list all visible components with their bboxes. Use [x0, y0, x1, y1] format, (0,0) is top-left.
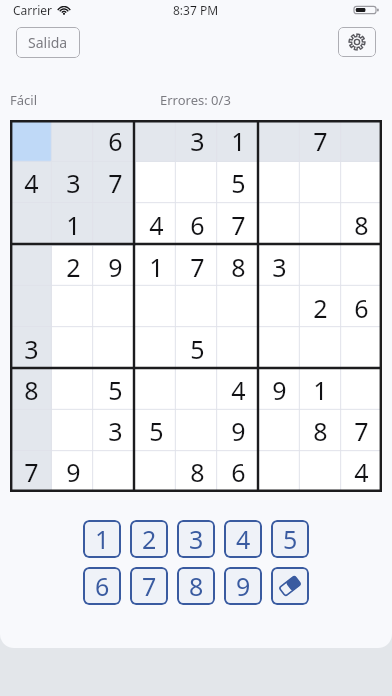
- button[interactable]: [10, 204, 52, 246]
- button[interactable]: 3: [10, 328, 52, 369]
- button[interactable]: 3: [259, 246, 300, 287]
- button[interactable]: 8: [177, 451, 218, 492]
- button[interactable]: 5: [177, 328, 218, 369]
- button[interactable]: 3: [52, 162, 94, 204]
- button[interactable]: 7: [177, 246, 218, 287]
- button[interactable]: 1: [83, 520, 121, 558]
- button[interactable]: [52, 120, 94, 162]
- button[interactable]: [52, 410, 94, 451]
- button[interactable]: 4: [10, 162, 52, 204]
- button[interactable]: 1: [136, 246, 177, 287]
- button[interactable]: [341, 369, 382, 410]
- button[interactable]: [218, 287, 259, 328]
- button[interactable]: [300, 246, 341, 287]
- button[interactable]: [259, 328, 300, 369]
- button[interactable]: 2: [130, 520, 168, 558]
- button[interactable]: [94, 204, 136, 246]
- button[interactable]: [259, 204, 300, 246]
- button[interactable]: [52, 369, 94, 410]
- button[interactable]: [52, 328, 94, 369]
- button[interactable]: [259, 451, 300, 492]
- button[interactable]: 6: [94, 120, 136, 162]
- button[interactable]: [136, 451, 177, 492]
- button[interactable]: [259, 410, 300, 451]
- button[interactable]: [94, 287, 136, 328]
- button[interactable]: 9: [224, 567, 262, 605]
- staticText: 8: [231, 250, 246, 284]
- button[interactable]: [136, 328, 177, 369]
- button[interactable]: 6: [218, 451, 259, 492]
- button[interactable]: [10, 246, 52, 287]
- button[interactable]: [10, 410, 52, 451]
- button[interactable]: [177, 162, 218, 204]
- button[interactable]: 1: [300, 369, 341, 410]
- button[interactable]: [177, 410, 218, 451]
- button[interactable]: 3: [177, 120, 218, 162]
- button[interactable]: 6: [341, 287, 382, 328]
- button[interactable]: [300, 451, 341, 492]
- button[interactable]: 1: [218, 120, 259, 162]
- button[interactable]: 6: [83, 567, 121, 605]
- button[interactable]: [341, 328, 382, 369]
- button[interactable]: [136, 120, 177, 162]
- button[interactable]: 9: [52, 451, 94, 492]
- button[interactable]: [177, 369, 218, 410]
- button[interactable]: 5: [94, 369, 136, 410]
- button[interactable]: 7: [300, 120, 341, 162]
- button[interactable]: [94, 451, 136, 492]
- button[interactable]: 5: [136, 410, 177, 451]
- button[interactable]: 9: [218, 410, 259, 451]
- button[interactable]: 7: [218, 204, 259, 246]
- button[interactable]: 4: [341, 451, 382, 492]
- button[interactable]: 8: [300, 410, 341, 451]
- button[interactable]: [136, 287, 177, 328]
- button[interactable]: [259, 287, 300, 328]
- button[interactable]: 4: [218, 369, 259, 410]
- button[interactable]: [300, 162, 341, 204]
- button[interactable]: 1: [52, 204, 94, 246]
- button[interactable]: Erase: [271, 567, 309, 605]
- button[interactable]: [300, 328, 341, 369]
- button[interactable]: 8: [218, 246, 259, 287]
- button[interactable]: Settings: [338, 27, 376, 57]
- button[interactable]: 8: [10, 369, 52, 410]
- button[interactable]: [259, 162, 300, 204]
- button[interactable]: [341, 162, 382, 204]
- staticText: 8: [24, 373, 39, 407]
- button[interactable]: 6: [177, 204, 218, 246]
- button[interactable]: [136, 162, 177, 204]
- button[interactable]: [218, 328, 259, 369]
- button[interactable]: 8: [177, 567, 215, 605]
- button[interactable]: 7: [94, 162, 136, 204]
- button[interactable]: 4: [224, 520, 262, 558]
- staticText: 1: [231, 124, 246, 158]
- button[interactable]: 9: [259, 369, 300, 410]
- button[interactable]: [10, 287, 52, 328]
- button[interactable]: [259, 120, 300, 162]
- button[interactable]: [341, 246, 382, 287]
- button[interactable]: [177, 287, 218, 328]
- button[interactable]: 5: [218, 162, 259, 204]
- button[interactable]: [300, 204, 341, 246]
- button[interactable]: 7: [130, 567, 168, 605]
- button[interactable]: [94, 328, 136, 369]
- button[interactable]: 5: [271, 520, 309, 558]
- button[interactable]: Salida: [16, 27, 80, 58]
- button[interactable]: [341, 120, 382, 162]
- staticText: 7: [354, 414, 369, 448]
- staticText: 6: [231, 455, 246, 489]
- button[interactable]: 2: [52, 246, 94, 287]
- button[interactable]: 9: [94, 246, 136, 287]
- button[interactable]: 8: [341, 204, 382, 246]
- staticText: 4: [354, 455, 369, 489]
- button[interactable]: 3: [94, 410, 136, 451]
- button[interactable]: [52, 287, 94, 328]
- button[interactable]: 7: [341, 410, 382, 451]
- button[interactable]: 3: [177, 520, 215, 558]
- staticText: 2: [142, 522, 157, 556]
- button[interactable]: 2: [300, 287, 341, 328]
- button[interactable]: 4: [136, 204, 177, 246]
- button[interactable]: 7: [10, 451, 52, 492]
- button[interactable]: [10, 120, 52, 162]
- button[interactable]: [136, 369, 177, 410]
